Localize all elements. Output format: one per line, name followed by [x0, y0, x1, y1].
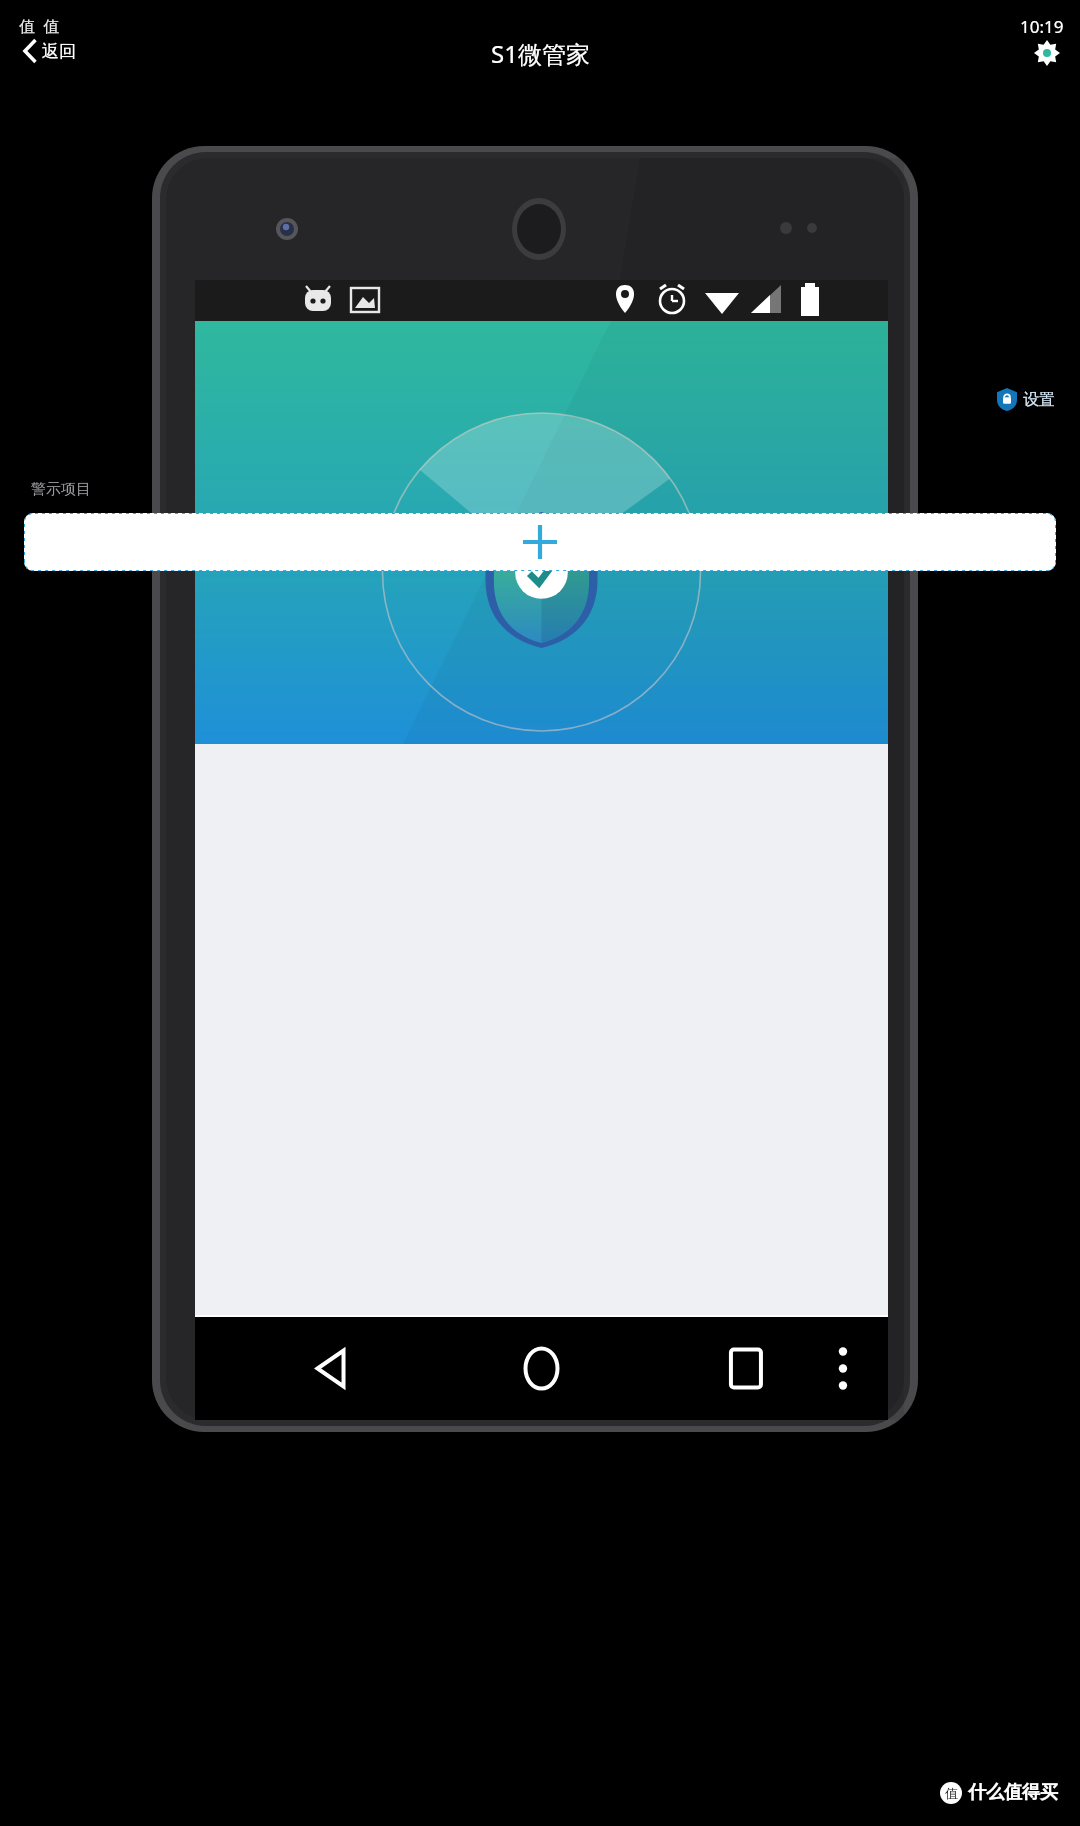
- button[interactable]: 返回: [19, 36, 80, 66]
- staticText: 什么值得买: [968, 1781, 1058, 1804]
- button[interactable]: Settings: [1030, 36, 1064, 70]
- staticText: 值: [945, 1785, 958, 1801]
- staticText: 10:19: [1020, 15, 1064, 38]
- staticText: 设置: [1023, 390, 1055, 410]
- staticText: 值 值: [19, 15, 60, 37]
- staticText: 警示项目: [31, 480, 91, 499]
- button[interactable]: 设置: [995, 386, 1057, 413]
- button[interactable]: Add alert item: [24, 513, 1056, 571]
- staticText: S1微管家: [491, 37, 590, 70]
- staticText: 返回: [42, 41, 76, 62]
